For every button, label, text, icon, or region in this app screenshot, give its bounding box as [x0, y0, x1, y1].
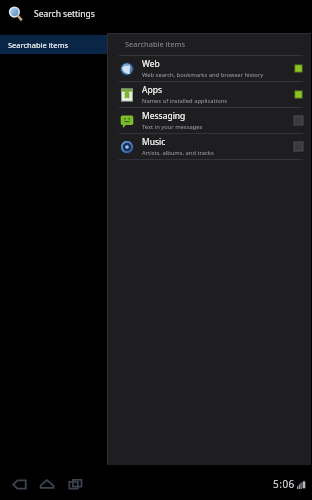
button[interactable]: Music	[107, 134, 311, 159]
button[interactable]: Recent apps	[64, 473, 86, 495]
staticText: Artists, albums, and tracks	[142, 149, 214, 157]
button[interactable]: Apps	[107, 82, 311, 107]
button[interactable]: Messaging	[107, 108, 311, 133]
button[interactable]: Web	[107, 56, 311, 81]
button[interactable]: Unchecked	[294, 142, 303, 151]
staticText: Apps	[142, 84, 162, 96]
button[interactable]: Searchable items	[0, 35, 107, 54]
button[interactable]: Status: clock and signal	[273, 477, 306, 491]
staticText: Searchable items	[8, 40, 69, 50]
button[interactable]: Unchecked	[294, 116, 303, 125]
staticText: Web search, bookmarks and browser histor…	[142, 71, 264, 79]
staticText: 5:06	[273, 477, 295, 491]
button[interactable]: Home	[36, 473, 58, 495]
staticText: Text in your messages	[142, 123, 203, 131]
staticText: Names of installed applications	[142, 97, 228, 105]
staticText: Messaging	[142, 110, 186, 122]
staticText: Music	[142, 136, 166, 148]
staticText: Searchable items	[125, 39, 186, 49]
button[interactable]: Checked	[294, 64, 303, 73]
staticText: Search settings	[34, 8, 95, 20]
staticText: Web	[142, 58, 160, 70]
button[interactable]: Checked	[294, 90, 303, 99]
button[interactable]: Back	[8, 473, 30, 495]
